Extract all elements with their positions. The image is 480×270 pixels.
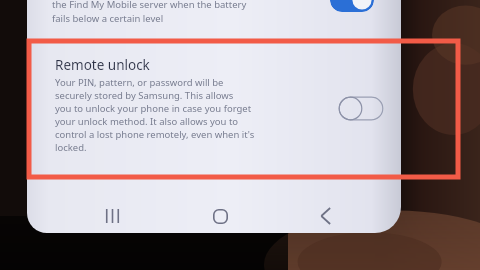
staticText: Your PIN, pattern, or password will be (55, 76, 224, 89)
button[interactable]: Home (200, 196, 240, 236)
staticText: Remote unlock (55, 56, 150, 74)
button[interactable]: Recent apps (92, 196, 132, 236)
staticText: your unlock method. It also allows you t… (55, 115, 239, 128)
staticText: fails below a certain level (52, 12, 164, 25)
staticText: securely stored by Samsung. This allows (55, 89, 234, 102)
staticText: locked. (55, 141, 87, 154)
staticText: you to unlock your phone in case you for… (55, 102, 252, 115)
button[interactable]: Back (305, 196, 345, 236)
button[interactable]: Send last location toggle, on (330, 0, 374, 12)
staticText: the Find My Mobile server when the batte… (52, 0, 247, 11)
button[interactable]: Remote unlock toggle, off (338, 96, 384, 121)
button[interactable]: Remote unlock (30, 44, 400, 174)
staticText: control a lost phone remotely, even when… (55, 128, 255, 141)
